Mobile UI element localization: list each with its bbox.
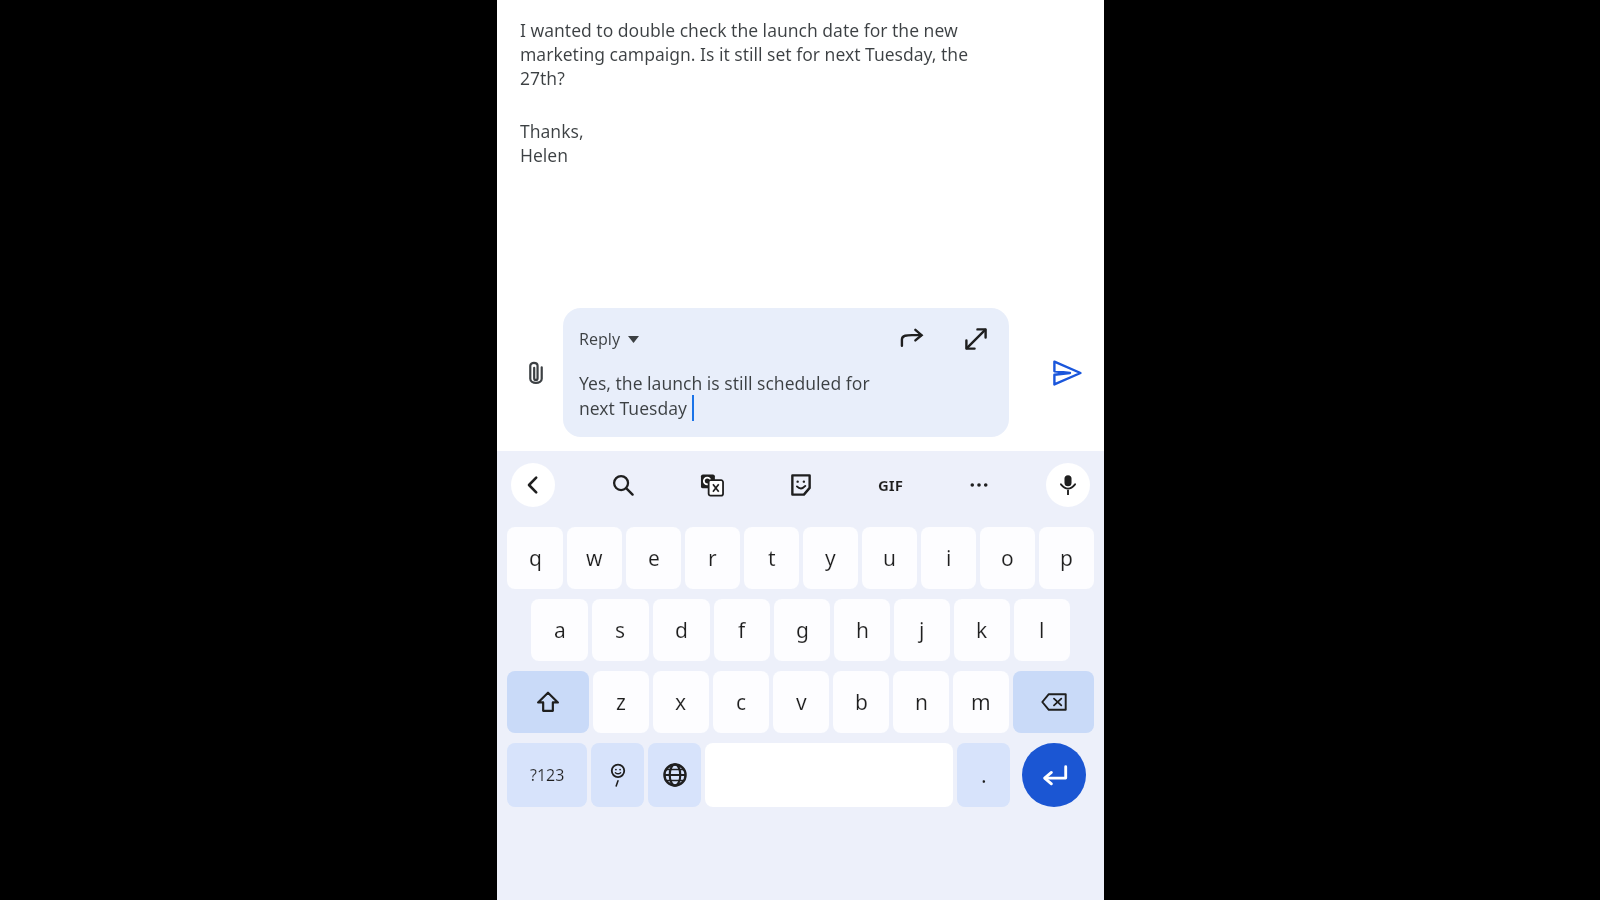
button[interactable]: Translate (690, 463, 734, 507)
staticText: s (615, 616, 626, 645)
staticText: I wanted to double check the launch date… (520, 18, 958, 42)
button[interactable]: Search (601, 463, 645, 507)
staticText: w (586, 544, 603, 573)
button[interactable]: Expand (957, 320, 995, 358)
button[interactable]: a (531, 599, 588, 661)
button[interactable]: Back (511, 463, 555, 507)
staticText: h (856, 616, 869, 645)
button[interactable]: p (1039, 527, 1094, 589)
button[interactable]: Enter (1022, 743, 1086, 807)
button[interactable]: Shift (507, 671, 589, 733)
staticText: l (1039, 616, 1045, 645)
staticText: . (981, 761, 987, 790)
button[interactable]: b (833, 671, 889, 733)
button[interactable]: y (803, 527, 858, 589)
staticText: m (971, 688, 991, 717)
staticText: v (796, 688, 807, 717)
button[interactable]: Attach file (514, 351, 558, 395)
staticText: y (825, 544, 836, 573)
button[interactable]: u (862, 527, 917, 589)
staticText: n (915, 688, 928, 717)
staticText: k (976, 616, 988, 645)
button[interactable]: t (744, 527, 799, 589)
staticText: marketing campaign. Is it still set for … (520, 42, 969, 66)
staticText: x (675, 688, 687, 717)
button[interactable]: Forward (893, 320, 931, 358)
button[interactable]: s (592, 599, 649, 661)
button[interactable]: m (953, 671, 1009, 733)
staticText: ?123 (530, 764, 565, 786)
staticText: j (919, 616, 925, 645)
button[interactable]: c (713, 671, 769, 733)
button[interactable]: Backspace (1013, 671, 1094, 733)
button[interactable]: Reply (579, 328, 639, 350)
button[interactable]: Reply (563, 308, 1009, 437)
staticText: d (675, 616, 688, 645)
staticText: e (648, 544, 660, 573)
staticText: Helen (520, 143, 569, 167)
button[interactable]: k (954, 599, 1010, 661)
staticText: q (529, 544, 542, 573)
button[interactable]: ?123 (507, 743, 587, 807)
button[interactable]: n (893, 671, 949, 733)
staticText: b (855, 688, 868, 717)
staticText: next Tuesday (579, 396, 692, 420)
button[interactable]: d (653, 599, 710, 661)
staticText: u (883, 544, 896, 573)
button[interactable]: f (714, 599, 770, 661)
button[interactable]: Change language (648, 743, 701, 807)
staticText: Thanks, (520, 119, 584, 143)
staticText: Reply (579, 328, 621, 350)
button[interactable]: v (773, 671, 829, 733)
button[interactable]: o (980, 527, 1035, 589)
staticText: f (738, 616, 746, 645)
staticText: p (1060, 544, 1073, 573)
button[interactable]: x (653, 671, 709, 733)
button[interactable]: Emoji (591, 743, 644, 807)
button[interactable]: j (894, 599, 950, 661)
button[interactable]: Voice input (1046, 463, 1090, 507)
button[interactable]: More options (957, 463, 1001, 507)
button[interactable]: z (593, 671, 649, 733)
button[interactable]: GIF (868, 463, 912, 507)
button[interactable]: w (567, 527, 622, 589)
staticText: 27th? (520, 66, 565, 90)
staticText: g (796, 616, 809, 645)
button[interactable]: Stickers (779, 463, 823, 507)
staticText: a (554, 616, 566, 645)
staticText: r (708, 544, 717, 573)
staticText: t (768, 544, 776, 573)
button[interactable]: . (957, 743, 1010, 807)
staticText: z (616, 688, 626, 717)
staticText: o (1001, 544, 1014, 573)
staticText: i (946, 544, 952, 573)
button[interactable]: g (774, 599, 830, 661)
button[interactable]: r (685, 527, 740, 589)
button[interactable]: q (507, 527, 563, 589)
staticText: GIF (878, 475, 903, 495)
staticText: Yes, the launch is still scheduled for (579, 371, 870, 395)
button[interactable]: l (1014, 599, 1070, 661)
button[interactable]: i (921, 527, 976, 589)
button[interactable]: Send (1044, 350, 1090, 396)
staticText: c (736, 688, 747, 717)
button[interactable]: h (834, 599, 890, 661)
button[interactable]: e (626, 527, 681, 589)
